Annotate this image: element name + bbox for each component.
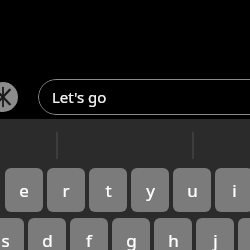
- staticText: f: [86, 229, 92, 250]
- button[interactable]: u: [173, 168, 211, 212]
- button[interactable]: d: [28, 218, 66, 250]
- button[interactable]: y: [131, 168, 169, 212]
- staticText: t: [105, 179, 112, 202]
- button[interactable]: i: [215, 168, 250, 212]
- staticText: d: [42, 229, 53, 250]
- staticText: h: [168, 229, 179, 250]
- button[interactable]: g: [112, 218, 150, 250]
- staticText: s: [1, 229, 10, 250]
- staticText: Let's go: [52, 87, 107, 107]
- button[interactable]: r: [47, 168, 85, 212]
- staticText: g: [126, 229, 137, 250]
- button[interactable]: e: [5, 168, 43, 212]
- button[interactable]: f: [70, 218, 108, 250]
- staticText: r: [62, 179, 70, 202]
- staticText: y: [146, 179, 155, 202]
- button[interactable]: t: [89, 168, 127, 212]
- staticText: j: [213, 229, 218, 250]
- button[interactable]: Input method: [0, 82, 18, 112]
- button[interactable]: k: [238, 218, 250, 250]
- button[interactable]: s: [0, 218, 24, 250]
- staticText: e: [19, 179, 29, 202]
- button[interactable]: h: [154, 218, 192, 250]
- staticText: i: [232, 179, 237, 202]
- staticText: u: [187, 179, 198, 202]
- button[interactable]: j: [196, 218, 234, 250]
- button[interactable]: Let's go: [38, 79, 250, 115]
